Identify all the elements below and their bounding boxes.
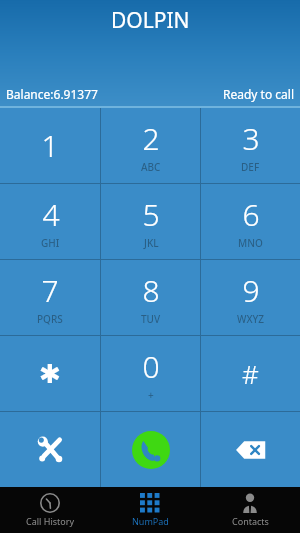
staticText: 4 <box>42 194 60 235</box>
staticText: PQRS <box>37 312 63 326</box>
staticText: TUV <box>141 312 161 326</box>
button[interactable]: Call History <box>0 487 100 533</box>
staticText: 3 <box>242 118 260 159</box>
staticText: # <box>242 356 259 391</box>
button[interactable]: Contacts <box>200 487 300 533</box>
staticText: JKL <box>144 236 159 250</box>
staticText: NumPad <box>132 515 169 527</box>
button[interactable]: 7 <box>0 260 100 335</box>
staticText: ABC <box>141 160 161 174</box>
staticText: + <box>148 388 154 402</box>
staticText: DEF <box>241 160 260 174</box>
staticText: MNO <box>238 236 263 250</box>
staticText: ✱ <box>39 359 61 389</box>
staticText: 5 <box>142 194 160 235</box>
button[interactable]: 6 <box>201 184 300 259</box>
staticText: WXYZ <box>237 312 265 326</box>
staticText: 9 <box>242 270 260 311</box>
button[interactable]: 1 <box>0 108 100 183</box>
staticText: Call History <box>26 515 75 527</box>
button[interactable]: 3 <box>201 108 300 183</box>
staticText: DOLPIN <box>111 6 190 35</box>
staticText: GHI <box>41 236 60 250</box>
button[interactable]: Backspace <box>201 412 300 487</box>
staticText: 7 <box>41 270 59 311</box>
button[interactable]: 2 <box>101 108 200 183</box>
staticText: Balance:6.91377 <box>6 86 98 102</box>
button[interactable]: NumPad <box>100 487 200 533</box>
button[interactable]: 5 <box>101 184 200 259</box>
button[interactable]: 9 <box>201 260 300 335</box>
staticText: 8 <box>142 270 160 311</box>
staticText: 6 <box>242 194 260 235</box>
button[interactable]: 0 <box>101 336 200 411</box>
button[interactable]: Call <box>101 412 200 487</box>
button[interactable]: # <box>201 336 300 411</box>
staticText: 2 <box>142 118 160 159</box>
button[interactable]: Settings <box>0 412 100 487</box>
button[interactable]: ✱ <box>0 336 100 411</box>
staticText: 1 <box>41 125 59 166</box>
staticText: Contacts <box>232 515 269 527</box>
button[interactable]: 4 <box>0 184 100 259</box>
staticText: Ready to call <box>223 86 294 102</box>
staticText: 0 <box>142 346 160 387</box>
button[interactable]: 8 <box>101 260 200 335</box>
